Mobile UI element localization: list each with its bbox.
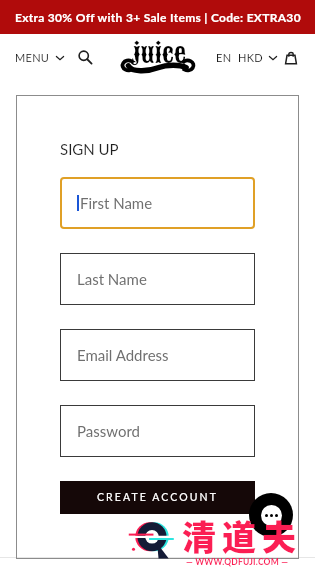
staticText: 清道夫 — [182, 511, 302, 560]
staticText: Password — [77, 422, 140, 440]
button[interactable]: Last Name — [60, 253, 255, 305]
staticText: Email Address — [77, 346, 169, 364]
button[interactable]: CREATE ACCOUNT — [60, 481, 255, 514]
button[interactable]: MENU — [15, 51, 64, 64]
button[interactable]: Cart — [284, 51, 297, 64]
staticText: MENU — [15, 51, 50, 64]
staticText: juice — [131, 37, 186, 70]
button[interactable]: Chat — [249, 493, 293, 537]
button[interactable]: EN — [216, 51, 277, 64]
staticText: Extra 30% Off with 3+ Sale Items | Code:… — [15, 10, 301, 24]
staticText: Last Name — [77, 270, 147, 288]
staticText: CREATE ACCOUNT — [97, 491, 219, 504]
staticText: EN — [216, 51, 232, 64]
button[interactable]: Password — [60, 405, 255, 457]
staticText: SIGN UP — [60, 140, 119, 158]
button[interactable]: First Name — [60, 177, 255, 229]
button[interactable]: Search — [77, 49, 93, 65]
staticText: — WWW.QDFUJI.COM — — [186, 557, 289, 567]
button[interactable]: Email Address — [60, 329, 255, 381]
button[interactable]: Extra 30% Off with 3+ Sale Items | Code:… — [0, 0, 315, 34]
staticText: HKD — [238, 51, 263, 64]
staticText: First Name — [80, 194, 153, 212]
